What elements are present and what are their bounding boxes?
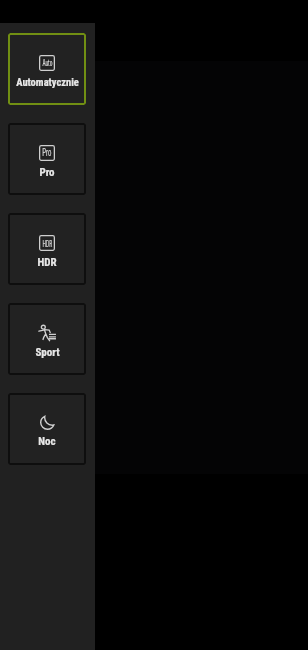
- staticText: Pro: [39, 166, 55, 179]
- other: Sport mode: [38, 325, 57, 341]
- staticText: Noc: [38, 435, 56, 448]
- button[interactable]: Pro mode: [8, 123, 86, 195]
- button[interactable]: Sport mode: [8, 303, 86, 375]
- button[interactable]: HDR mode: [8, 213, 86, 285]
- button[interactable]: Automatic mode: [8, 33, 86, 105]
- button[interactable]: Night mode: [8, 393, 86, 465]
- other: Automatic mode: [39, 55, 55, 71]
- other: HDR mode: [39, 235, 55, 251]
- staticText: Automatycznie: [16, 76, 79, 88]
- staticText: Pro: [42, 147, 52, 159]
- staticText: HDR: [37, 256, 57, 269]
- staticText: HDR: [43, 238, 52, 249]
- other: Night mode: [40, 415, 55, 430]
- staticText: Auto: [42, 58, 53, 69]
- other: Pro mode: [39, 145, 55, 161]
- staticText: Sport: [35, 346, 60, 359]
